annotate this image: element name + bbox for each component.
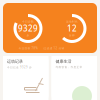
staticText: 已达成 12 分钟 [43,46,64,50]
staticText: 今日已走 9329 步 [7,65,32,69]
staticText: 健康生活 [55,59,71,64]
staticText: 今日目标 78% [18,46,37,50]
staticText: 均衡饮食，作息正常 [55,65,82,69]
staticText: 今日步数 [22,20,34,23]
staticText: 分钟 [69,34,75,37]
button[interactable]: 运动记录 [3,56,48,100]
button[interactable]: 健康生活 [51,56,97,100]
staticText: 步 [26,34,29,37]
staticText: 9329 [18,23,38,34]
staticText: 12 [67,23,77,34]
staticText: 运动记录 [7,59,23,64]
staticText: 运动时长 [66,20,78,23]
